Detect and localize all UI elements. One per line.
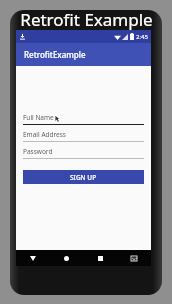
- staticText: Email Address: [23, 130, 66, 139]
- staticText: SIGN UP: [70, 173, 97, 182]
- staticText: RetrofitExample: [24, 49, 86, 60]
- button[interactable]: Email Address: [23, 130, 144, 142]
- staticText: Password: [23, 147, 53, 156]
- button[interactable]: SIGN UP: [23, 170, 144, 184]
- button[interactable]: Full Name: [23, 113, 144, 125]
- button[interactable]: Home: [49, 250, 83, 266]
- button[interactable]: Password: [23, 147, 144, 159]
- staticText: Full Name: [23, 113, 54, 122]
- button[interactable]: RetrofitExample: [16, 43, 151, 66]
- button[interactable]: Back: [16, 250, 49, 266]
- staticText: Retrofit Example: [20, 8, 153, 30]
- button[interactable]: Keyboard: [117, 250, 151, 266]
- staticText: 2:45: [136, 33, 148, 41]
- button[interactable]: Recent apps: [83, 250, 117, 266]
